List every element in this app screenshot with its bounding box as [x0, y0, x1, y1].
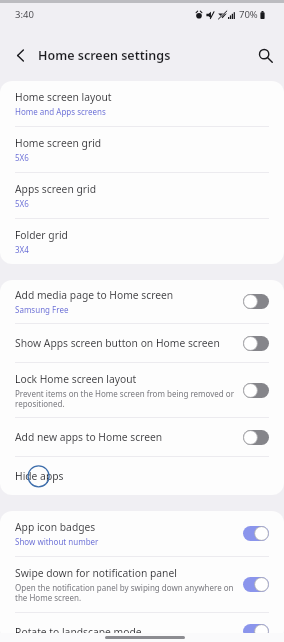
button[interactable]: Add media page to Home screen [0, 280, 284, 323]
staticText: Open the notification panel by swiping d… [15, 582, 235, 603]
staticText: Home and Apps screens [15, 106, 106, 117]
button[interactable]: Folder grid [0, 219, 284, 264]
staticText: Apps screen grid [15, 182, 97, 196]
button[interactable]: Home screen layout [0, 81, 284, 126]
staticText: App icon badges [15, 520, 96, 534]
staticText: Samsung Free [15, 304, 69, 315]
staticText: Swipe down for notification panel [15, 566, 177, 580]
button[interactable]: App icon badges [0, 511, 284, 556]
staticText: Add new apps to Home screen [15, 430, 163, 444]
button[interactable]: Lock Home screen layout [0, 363, 284, 417]
staticText: Rotate to landscape mode [15, 625, 235, 639]
staticText: 5X6 [15, 198, 29, 209]
staticText: 3X4 [15, 244, 29, 255]
staticText: Show Apps screen button on Home screen [15, 336, 220, 350]
staticText: Show without number [15, 536, 99, 547]
button[interactable]: Home screen grid [0, 127, 284, 172]
button[interactable]: Apps screen grid [0, 173, 284, 218]
button[interactable]: Navigate up [6, 41, 34, 69]
button[interactable]: Search [251, 41, 279, 69]
staticText: 3:40 [15, 8, 34, 21]
button[interactable]: Swipe down for notification panel [0, 557, 284, 612]
staticText: 70% [239, 8, 258, 21]
staticText: Home screen grid [15, 136, 102, 150]
button[interactable]: Show Apps screen button on Home screen [0, 324, 284, 362]
button[interactable]: Rotate to landscape mode [0, 613, 284, 642]
button[interactable]: Hide apps [0, 457, 284, 495]
staticText: Add media page to Home screen [15, 288, 174, 302]
staticText: 5X6 [15, 152, 29, 163]
staticText: Prevent items on the Home screen from be… [15, 388, 235, 409]
staticText: Lock Home screen layout [15, 372, 137, 386]
button[interactable]: Add new apps to Home screen [0, 418, 284, 456]
staticText: Folder grid [15, 228, 68, 242]
staticText: Home screen settings [38, 47, 171, 64]
staticText: Home screen layout [15, 90, 112, 104]
staticText: Hide apps [15, 469, 64, 483]
